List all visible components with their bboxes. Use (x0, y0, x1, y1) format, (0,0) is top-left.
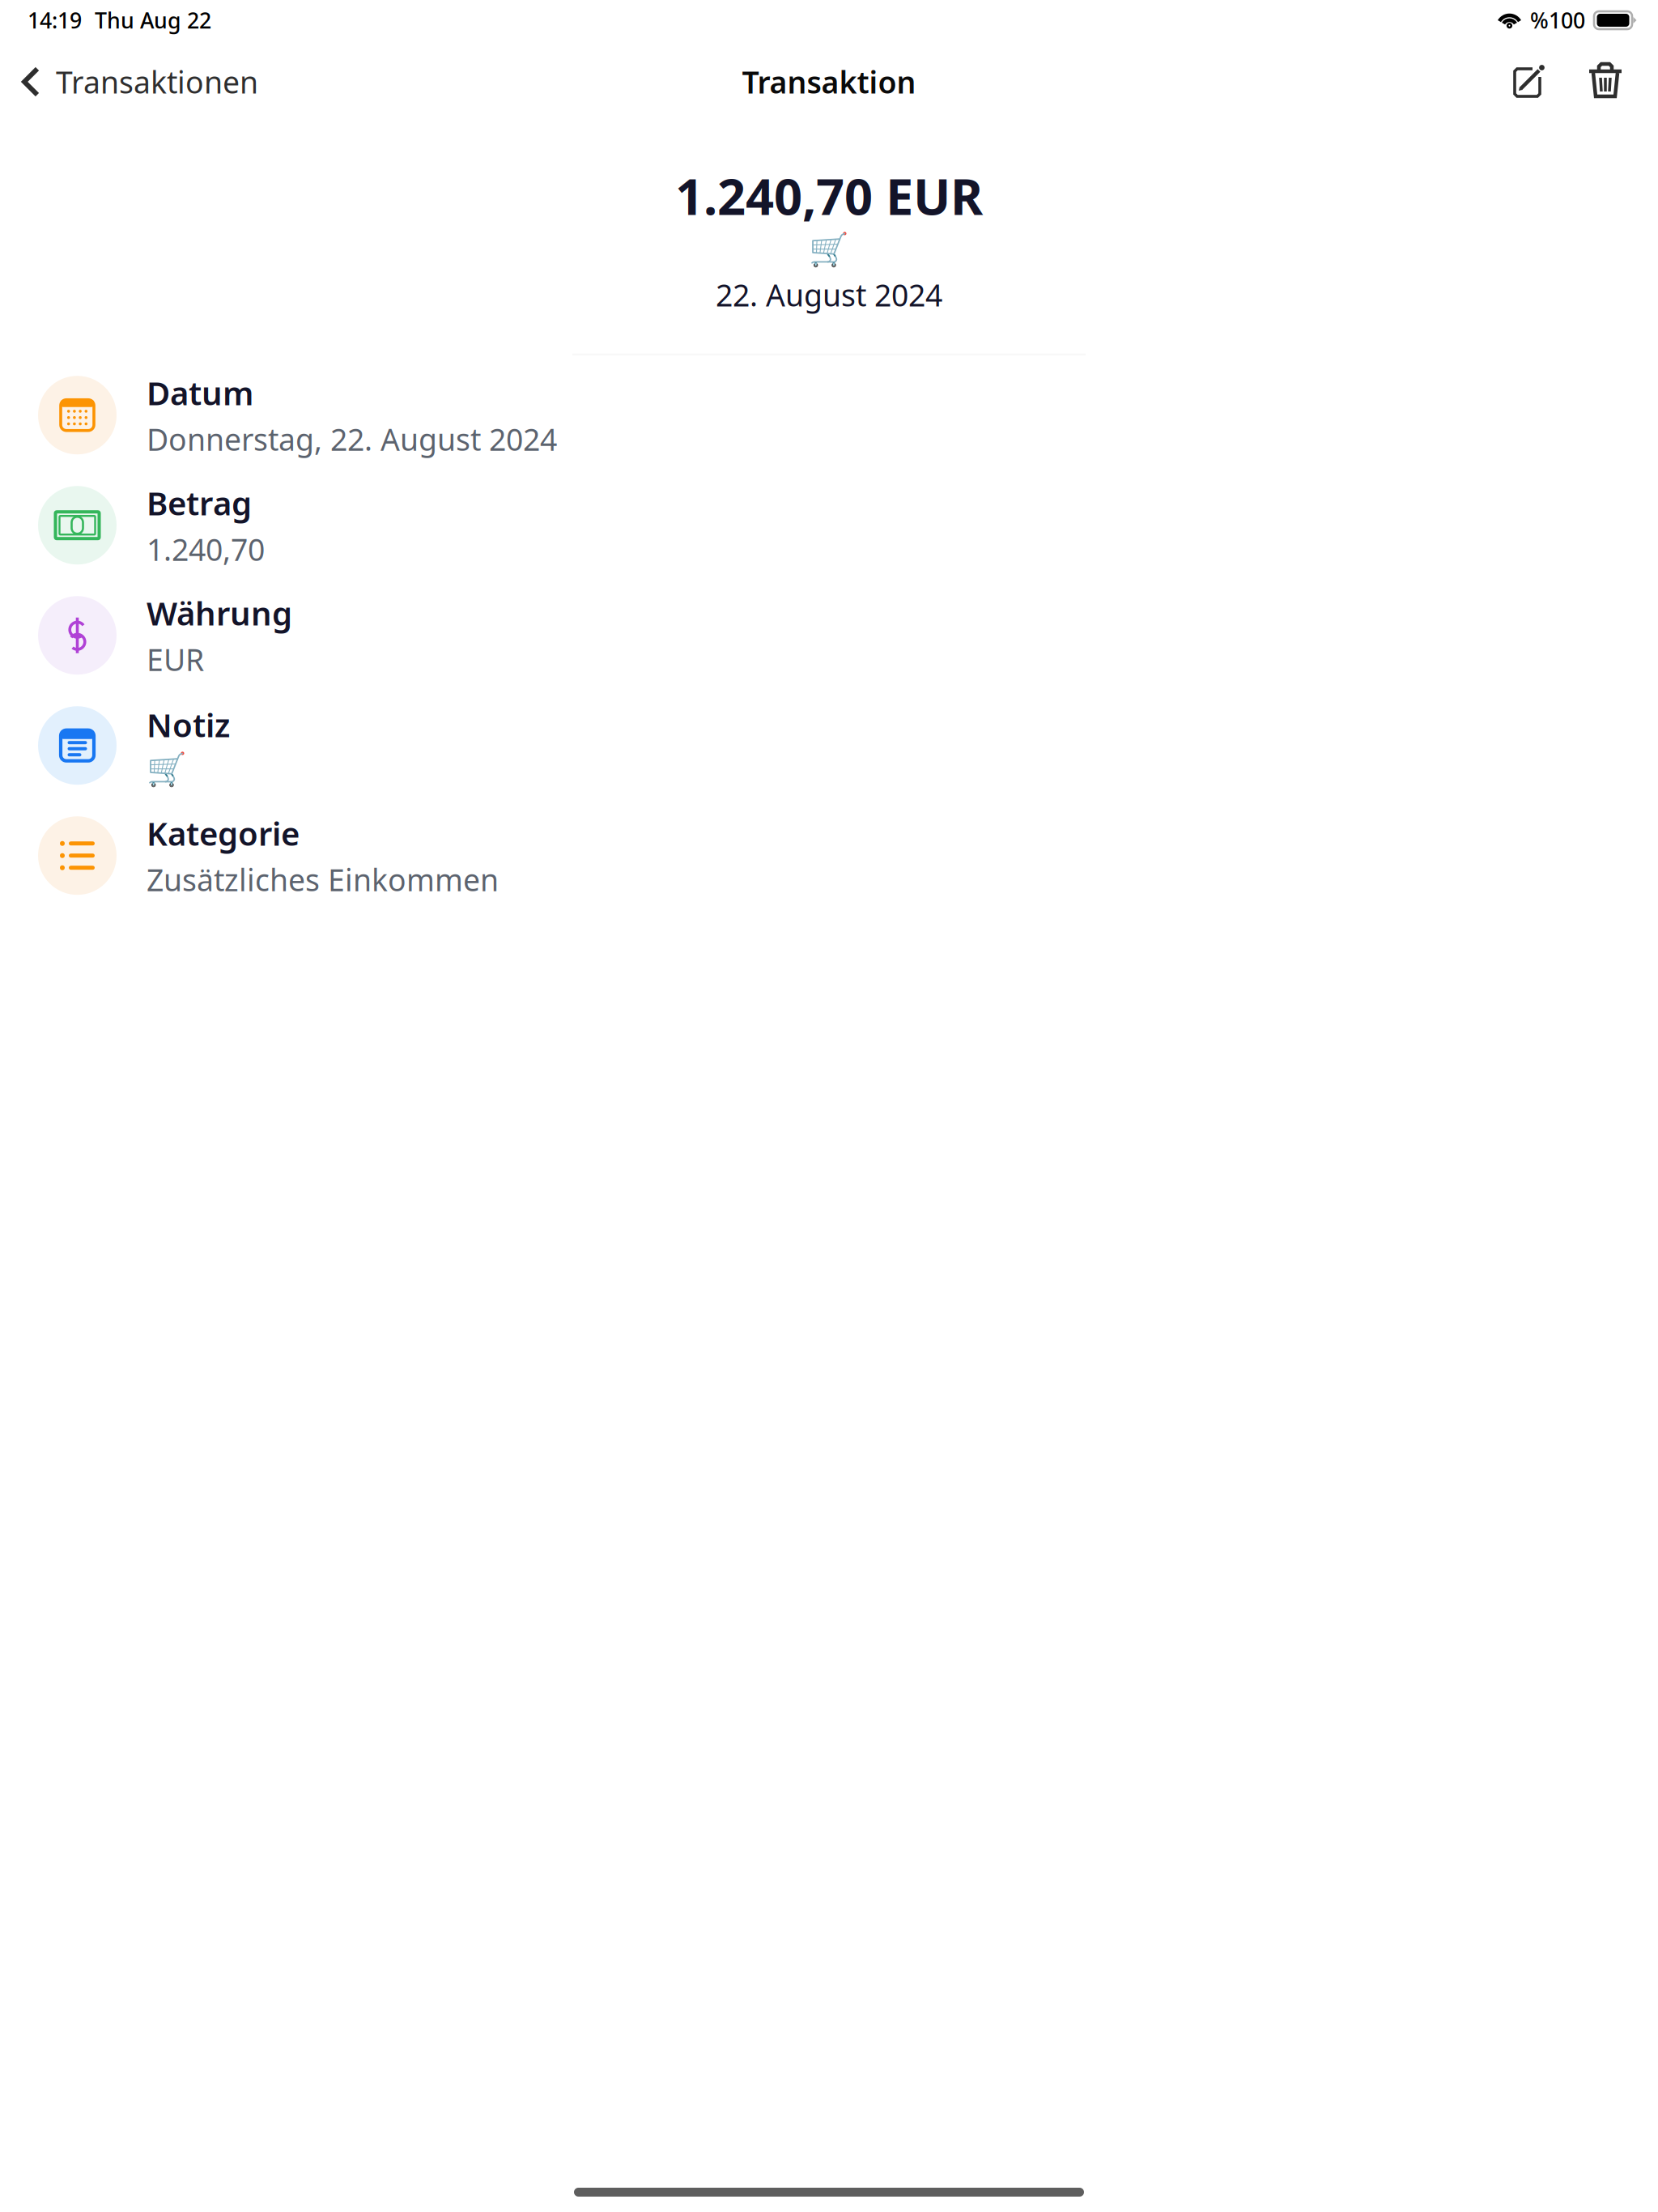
button[interactable]: Kategorie (0, 801, 1658, 911)
staticText: %100 (1530, 6, 1585, 35)
staticText: EUR (147, 639, 204, 679)
button[interactable]: Betrag (0, 470, 1658, 580)
button[interactable]: Datum (0, 360, 1658, 470)
staticText: 1.240,70 (147, 529, 265, 569)
staticText: 22. August 2024 (716, 275, 942, 315)
button[interactable]: Edit (1493, 49, 1571, 110)
staticText: Notiz (147, 703, 230, 746)
staticText: Transaktion (742, 62, 916, 102)
staticText: Thu Aug 22 (95, 6, 211, 35)
staticText: Donnerstag, 22. August 2024 (147, 419, 557, 459)
staticText: Kategorie (147, 812, 300, 855)
staticText: Datum (147, 371, 253, 414)
staticText: 🛒 (809, 231, 849, 268)
staticText: Zusätzliches Einkommen (147, 859, 499, 900)
staticText: Transaktionen (56, 62, 258, 102)
staticText: 1.240,70 EUR (675, 163, 983, 229)
button[interactable]: Notiz (0, 690, 1658, 801)
button[interactable]: Transaktionen (0, 47, 278, 112)
staticText: Währung (147, 591, 292, 634)
staticText: 14:19 (28, 6, 82, 35)
staticText: Betrag (147, 481, 252, 524)
button[interactable]: Delete (1571, 49, 1640, 109)
staticText: 🛒 (147, 751, 187, 788)
button[interactable]: Währung (0, 580, 1658, 690)
